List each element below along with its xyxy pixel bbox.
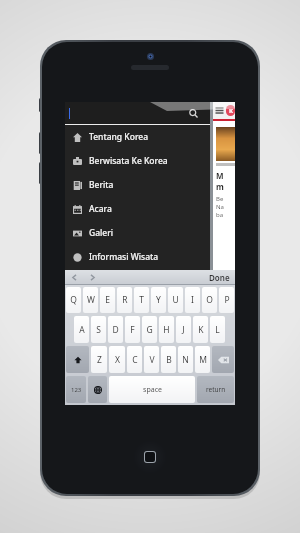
button[interactable]: F: [125, 316, 140, 343]
staticText: K: [229, 107, 233, 115]
staticText: O: [206, 294, 213, 306]
button[interactable]: Berwisata Ke Korea: [65, 149, 210, 173]
button[interactable]: H: [159, 316, 174, 343]
staticText: Informasi Wisata: [89, 251, 159, 263]
button[interactable]: R: [117, 287, 132, 313]
button[interactable]: Shift: [66, 346, 89, 373]
staticText: P: [224, 294, 230, 306]
button[interactable]: Done: [209, 270, 230, 284]
staticText: R: [122, 294, 128, 306]
button[interactable]: [65, 102, 210, 124]
button[interactable]: Informasi Wisata: [65, 245, 210, 269]
staticText: W: [87, 294, 95, 306]
button[interactable]: V: [144, 346, 159, 373]
button[interactable]: Tentang Korea: [65, 125, 210, 149]
staticText: L: [215, 324, 220, 336]
button[interactable]: Acara: [65, 197, 210, 221]
staticText: V: [149, 354, 155, 366]
button[interactable]: M: [195, 346, 210, 373]
staticText: D: [112, 324, 119, 336]
button[interactable]: G: [142, 316, 157, 343]
button[interactable]: Emoji: [88, 376, 107, 403]
button[interactable]: J: [176, 316, 191, 343]
staticText: H: [163, 324, 170, 336]
button[interactable]: S: [91, 316, 106, 343]
staticText: Na: [216, 203, 224, 211]
staticText: m: [216, 181, 224, 192]
staticText: N: [182, 354, 189, 366]
staticText: Galeri: [89, 227, 114, 239]
staticText: Acara: [89, 203, 112, 215]
button[interactable]: B: [161, 346, 176, 373]
staticText: M: [199, 354, 207, 366]
staticText: I: [191, 294, 194, 306]
staticText: X: [115, 354, 120, 366]
staticText: G: [146, 324, 153, 336]
button[interactable]: X: [109, 346, 125, 373]
staticText: A: [79, 324, 85, 336]
staticText: S: [96, 324, 101, 336]
button[interactable]: Numbers: [66, 376, 86, 403]
staticText: K: [198, 324, 204, 336]
staticText: Berwisata Ke Korea: [89, 155, 168, 167]
staticText: space: [143, 385, 162, 395]
button[interactable]: N: [178, 346, 193, 373]
button[interactable]: O: [202, 287, 217, 313]
button[interactable]: D: [108, 316, 123, 343]
button[interactable]: Next field: [83, 270, 101, 284]
staticText: Done: [209, 272, 230, 283]
button[interactable]: U: [168, 287, 183, 313]
button[interactable]: Berita: [65, 173, 210, 197]
staticText: F: [130, 324, 135, 336]
button[interactable]: K: [193, 316, 208, 343]
button[interactable]: L: [210, 316, 225, 343]
button[interactable]: W: [83, 287, 98, 313]
button[interactable]: space: [109, 376, 195, 403]
button[interactable]: E: [100, 287, 115, 313]
button[interactable]: Home: [133, 440, 167, 474]
button[interactable]: T: [134, 287, 149, 313]
staticText: Tentang Korea: [89, 131, 149, 143]
button[interactable]: Z: [91, 346, 107, 373]
staticText: Z: [97, 354, 102, 366]
staticText: E: [105, 294, 110, 306]
staticText: 123: [71, 386, 82, 394]
staticText: U: [172, 294, 179, 306]
button[interactable]: Galeri: [65, 221, 210, 245]
staticText: C: [132, 354, 138, 366]
staticText: return: [206, 385, 226, 394]
button[interactable]: Y: [151, 287, 166, 313]
staticText: Q: [70, 294, 77, 306]
button[interactable]: Backspace: [212, 346, 234, 373]
button[interactable]: C: [127, 346, 142, 373]
staticText: ba: [216, 211, 224, 219]
staticText: Be: [216, 195, 224, 203]
button[interactable]: Return: [197, 376, 234, 403]
button[interactable]: Q: [66, 287, 81, 313]
staticText: M: [216, 170, 224, 181]
staticText: T: [139, 294, 144, 306]
staticText: Berita: [89, 179, 114, 191]
button[interactable]: P: [219, 287, 234, 313]
button[interactable]: Previous field: [65, 270, 83, 284]
button[interactable]: I: [185, 287, 200, 313]
staticText: J: [182, 324, 185, 336]
staticText: Y: [156, 294, 161, 306]
button[interactable]: A: [74, 316, 89, 343]
staticText: B: [166, 354, 172, 366]
